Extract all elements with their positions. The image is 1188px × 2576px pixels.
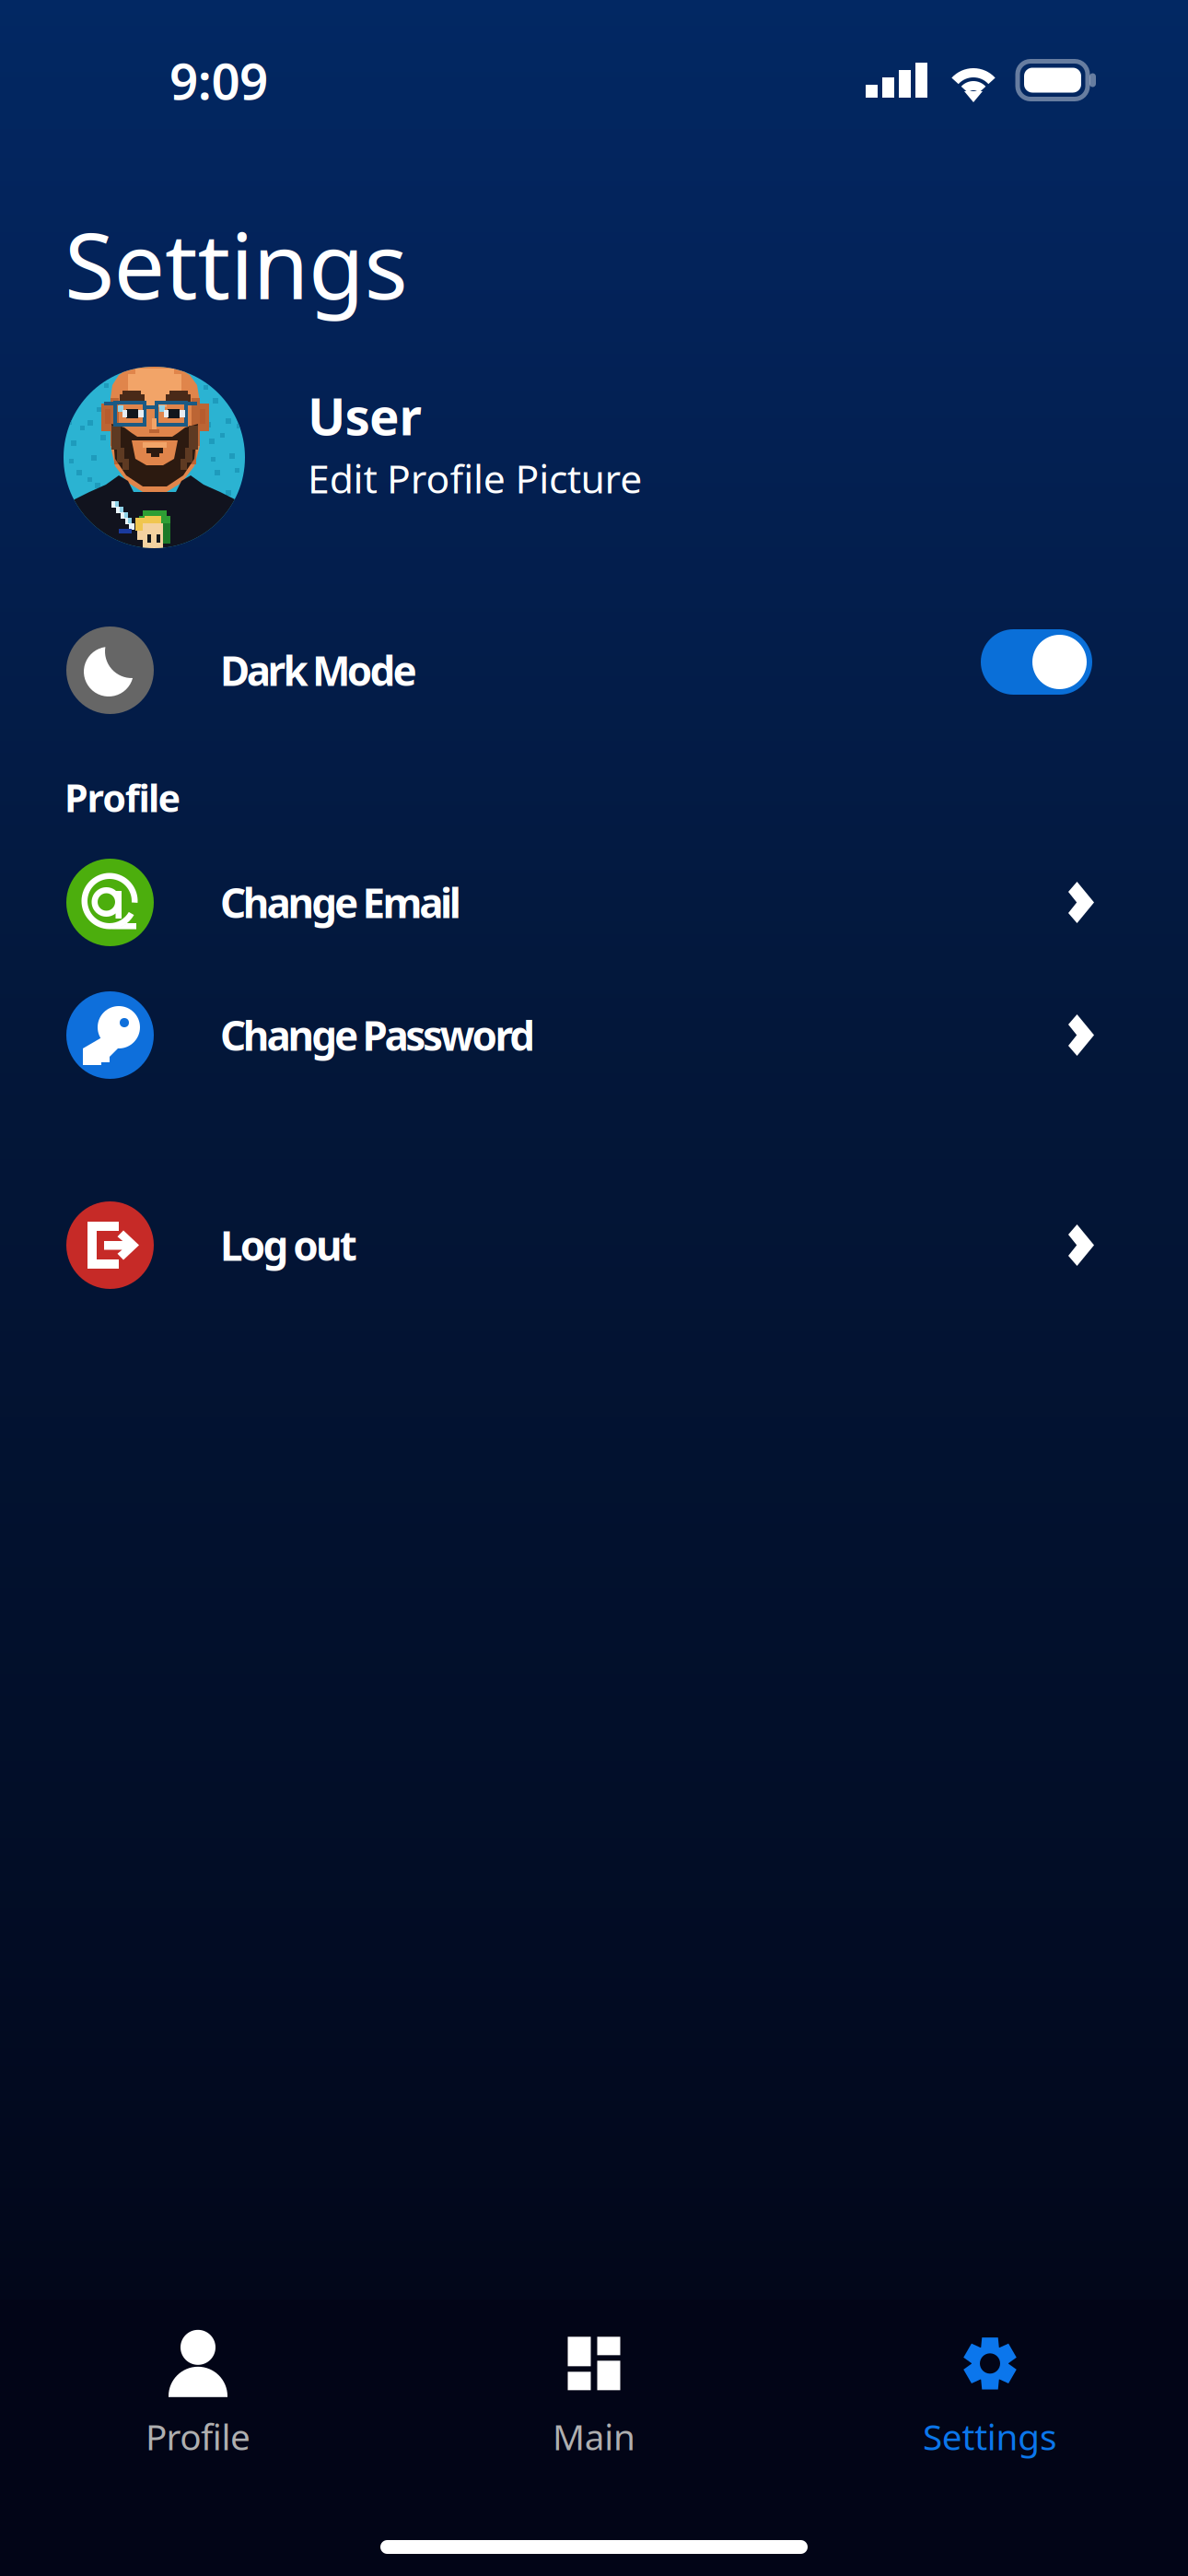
staticText: Settings [64,204,408,324]
button[interactable]: Main tab [396,2328,792,2462]
staticText: Edit Profile Picture [308,452,642,504]
button[interactable]: Profile tab [0,2328,396,2462]
staticText: Main [552,2413,635,2460]
button[interactable]: Change Email [0,859,1188,946]
staticText: Log out [220,1218,357,1272]
staticText: Change Email [220,876,461,929]
button[interactable]: Change Password [0,991,1188,1079]
staticText: Profile [64,772,181,823]
staticText: Settings [923,2413,1057,2460]
staticText: Profile [145,2413,251,2460]
button[interactable]: User [64,367,642,548]
button[interactable]: Settings tab [792,2328,1188,2462]
staticText: User [308,382,421,449]
staticText: 9:09 [169,47,268,114]
staticText: Change Password [220,1008,535,1062]
staticText: Dark Mode [220,643,417,697]
button[interactable]: Log out [0,1201,1188,1289]
button[interactable]: Dark Mode [981,629,1092,711]
